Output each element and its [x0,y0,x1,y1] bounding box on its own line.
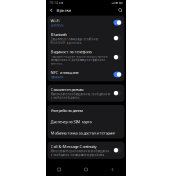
button[interactable]: Call & Message Continuity [48,142,124,159]
staticText: Свържете се с намиращи се наблизо Blueto… [50,37,98,44]
staticText: Изключване на обажданията, съобщенията и… [50,92,109,99]
staticText: Lorem-5G [50,24,63,27]
staticText: Налично [50,76,63,79]
button[interactable]: Мобилна точка за достъп и тетъринг [48,127,124,138]
staticText: 10:14 [49,1,58,5]
button[interactable]: Search [118,8,123,13]
button[interactable]: Самолетен режим [48,84,124,102]
button[interactable]: Употреба на данни [48,105,124,116]
staticText: Мобилна точка за достъп и тетъринг [50,130,115,135]
button[interactable]: Bluetooth [48,29,124,47]
staticText: NFC и плащане [50,70,78,75]
staticText: Употреба на данни [50,108,82,113]
button[interactable]: Видимост на телефона [48,47,124,68]
staticText: Видимост на телефона [50,49,91,54]
staticText: Bluetooth [50,32,66,37]
button[interactable]: Back [49,8,54,13]
button[interactable]: Диспечер на SIM карта [48,116,124,127]
staticText: Wi-Fi [50,18,59,23]
staticText: Използвайте приложенията за обаждания и … [50,149,109,157]
staticText: Връзки [56,8,71,13]
button[interactable]: Wi-Fi [48,16,124,29]
button[interactable]: Back [99,163,126,176]
staticText: Call & Message Continuity [50,144,96,149]
button[interactable]: NFC и плащане [48,68,124,81]
button[interactable]: Recent apps [46,163,73,176]
staticText: Разрешете на други устройства да открива… [50,55,107,65]
staticText: Самолетен режим [50,87,83,92]
button[interactable]: Home [73,163,99,176]
staticText: Диспечер на SIM карта [50,119,91,124]
